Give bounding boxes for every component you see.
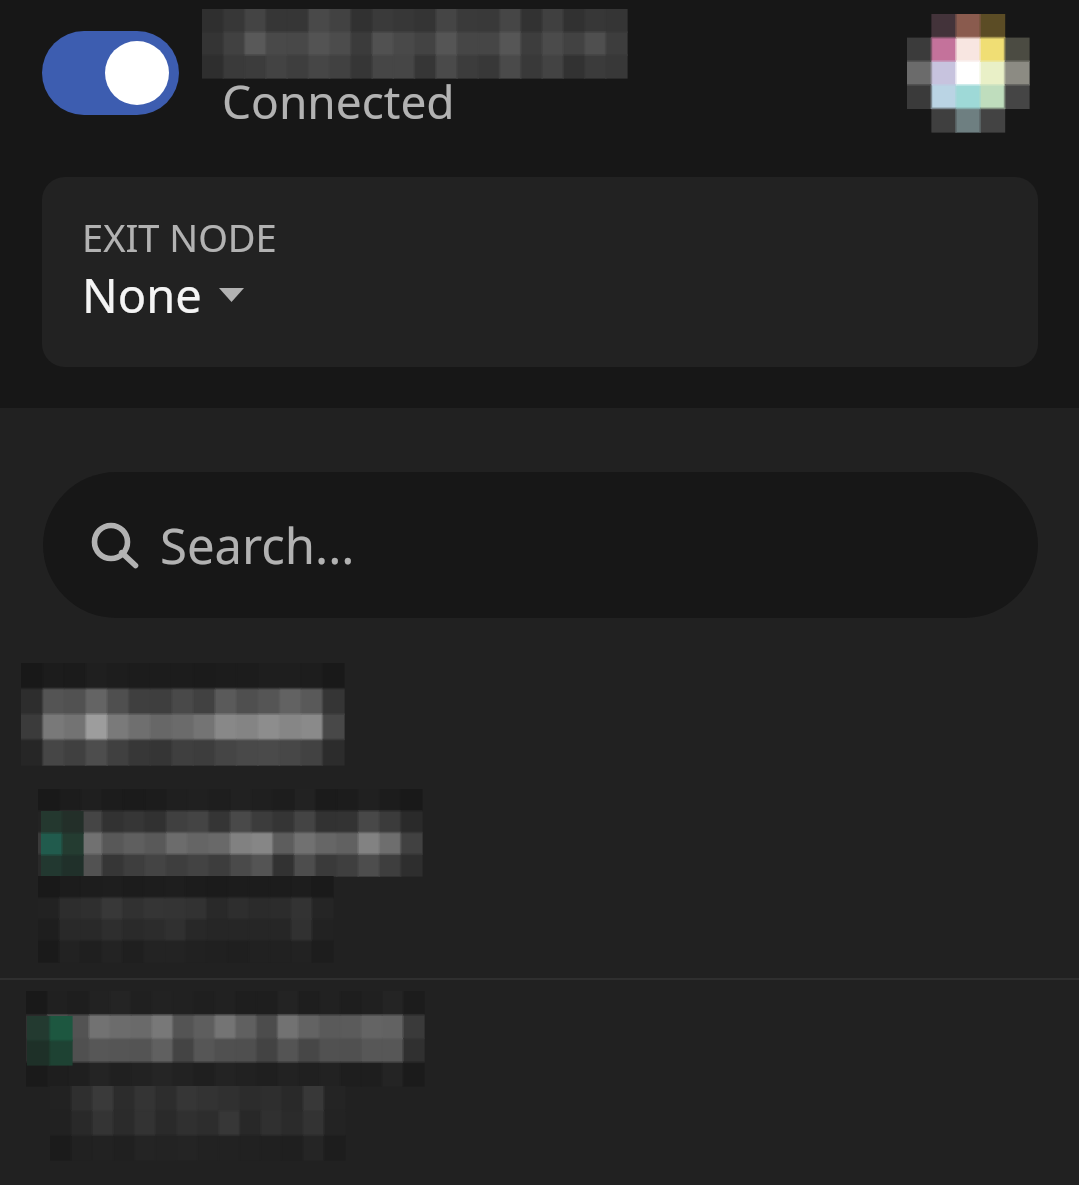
- button[interactable]: My devices: [0, 618, 1079, 765]
- staticText: None: [82, 263, 202, 327]
- button[interactable]: Search: [43, 472, 1038, 618]
- button[interactable]: Device 2, connected: [0, 980, 1079, 1185]
- staticText: Search...: [160, 512, 355, 579]
- button[interactable]: Account: [907, 14, 1029, 132]
- staticText: Connected: [222, 70, 455, 133]
- button[interactable]: Device 1, connected: [0, 765, 1079, 978]
- button[interactable]: Exit node: None: [42, 177, 1038, 367]
- staticText: EXIT NODE: [82, 211, 277, 263]
- button[interactable]: Toggle VPN connection: [42, 31, 179, 115]
